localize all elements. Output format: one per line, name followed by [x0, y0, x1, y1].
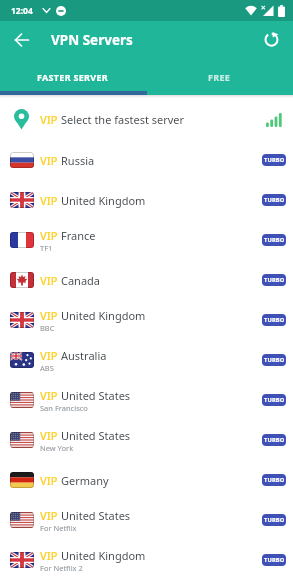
button[interactable]: VIP: [0, 220, 293, 260]
staticText: For Netflix 2: [40, 563, 83, 573]
staticText: TURBO: [264, 556, 285, 564]
staticText: Select the fastest server: [61, 112, 185, 127]
staticText: TURBO: [264, 436, 285, 444]
staticText: TURBO: [264, 396, 285, 404]
staticText: Canada: [61, 273, 101, 288]
staticText: United Kingdom: [61, 308, 146, 323]
staticText: VIP: [40, 112, 61, 127]
button[interactable]: FASTER SERVER: [0, 58, 146, 95]
staticText: United States: [61, 388, 131, 403]
staticText: Germany: [61, 473, 109, 488]
staticText: TURBO: [264, 516, 285, 524]
staticText: TURBO: [264, 276, 285, 284]
staticText: FASTER SERVER: [37, 71, 109, 83]
staticText: VIP: [40, 388, 61, 403]
button[interactable]: VIP: [0, 180, 293, 220]
button[interactable]: VIP: [0, 500, 293, 540]
staticText: VIP: [40, 193, 61, 208]
staticText: BBC: [40, 323, 55, 333]
button[interactable]: VIP: [0, 540, 293, 580]
staticText: VIP: [40, 308, 61, 323]
staticText: United States: [61, 508, 131, 523]
staticText: San Francisco: [40, 403, 88, 413]
staticText: TURBO: [264, 196, 285, 204]
staticText: United States: [61, 428, 131, 443]
staticText: United Kingdom: [61, 548, 146, 563]
staticText: VIP: [40, 428, 61, 443]
staticText: VPN Servers: [51, 31, 133, 49]
staticText: VIP: [40, 273, 61, 288]
button[interactable]: VIP: [0, 300, 293, 340]
staticText: Australia: [61, 348, 107, 363]
staticText: TURBO: [264, 156, 285, 164]
staticText: Russia: [61, 153, 95, 168]
staticText: TURBO: [264, 356, 285, 364]
staticText: TURBO: [264, 236, 285, 244]
button[interactable]: VIP: [0, 460, 293, 500]
staticText: TURBO: [264, 476, 285, 484]
staticText: TURBO: [264, 316, 285, 324]
button[interactable]: VIP: [0, 98, 293, 140]
staticText: For Netflix: [40, 523, 77, 533]
button[interactable]: FREE: [146, 58, 293, 95]
staticText: VIP: [40, 228, 61, 243]
button[interactable]: VIP: [0, 420, 293, 460]
staticText: France: [61, 228, 96, 243]
staticText: VIP: [40, 508, 61, 523]
staticText: ABS: [40, 363, 54, 373]
staticText: TF1: [40, 243, 53, 253]
staticText: VIP: [40, 548, 61, 563]
staticText: VIP: [40, 153, 61, 168]
staticText: FREE: [208, 71, 231, 83]
button[interactable]: VIP: [0, 380, 293, 420]
staticText: United Kingdom: [61, 193, 146, 208]
staticText: VIP: [40, 473, 61, 488]
button[interactable]: VIP: [0, 260, 293, 300]
staticText: New York: [40, 443, 74, 453]
button[interactable]: [0, 21, 44, 58]
button[interactable]: VIP: [0, 340, 293, 380]
staticText: 12:04: [11, 5, 33, 17]
staticText: VIP: [40, 348, 61, 363]
button[interactable]: [249, 21, 293, 58]
button[interactable]: VIP: [0, 140, 293, 180]
